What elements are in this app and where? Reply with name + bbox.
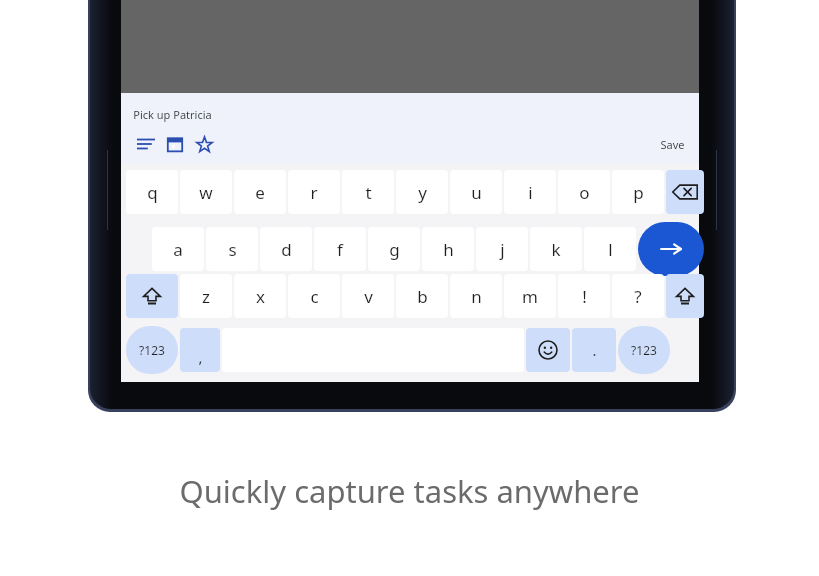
button[interactable]: o xyxy=(558,170,610,214)
button[interactable]: Emoji xyxy=(526,328,570,372)
staticText: z xyxy=(202,285,210,308)
staticText: . xyxy=(592,340,597,360)
staticText: i xyxy=(528,181,533,204)
staticText: o xyxy=(579,181,590,204)
button[interactable]: , xyxy=(180,328,220,372)
button[interactable]: Enter xyxy=(638,222,704,276)
staticText: ! xyxy=(582,285,587,308)
staticText: , xyxy=(198,347,203,367)
staticText: t xyxy=(365,181,372,204)
staticText: a xyxy=(173,238,183,261)
staticText: r xyxy=(310,181,318,204)
staticText: q xyxy=(147,181,158,204)
button[interactable]: f xyxy=(314,227,366,271)
staticText: e xyxy=(255,181,265,204)
button[interactable]: x xyxy=(234,274,286,318)
staticText: d xyxy=(281,238,292,261)
staticText: b xyxy=(417,285,428,308)
button[interactable]: i xyxy=(504,170,556,214)
staticText: c xyxy=(310,285,319,308)
staticText: ?123 xyxy=(631,342,657,358)
staticText: s xyxy=(228,238,237,261)
button[interactable]: c xyxy=(288,274,340,318)
other: Details xyxy=(137,137,155,151)
staticText: x xyxy=(256,285,265,308)
button[interactable]: e xyxy=(234,170,286,214)
button[interactable]: y xyxy=(396,170,448,214)
staticText: g xyxy=(389,238,400,261)
button[interactable]: m xyxy=(504,274,556,318)
button[interactable]: a xyxy=(152,227,204,271)
button[interactable]: d xyxy=(260,227,312,271)
staticText: Pick up Patricia xyxy=(133,107,212,122)
staticText: Quickly capture tasks anywhere xyxy=(179,470,640,512)
button[interactable]: r xyxy=(288,170,340,214)
staticText: m xyxy=(522,285,538,308)
staticText: j xyxy=(500,238,505,261)
staticText: w xyxy=(199,181,213,204)
button[interactable]: z xyxy=(180,274,232,318)
button[interactable]: Star xyxy=(191,131,217,157)
button[interactable]: ?123 xyxy=(126,326,178,374)
button[interactable]: Set date xyxy=(162,131,188,157)
staticText: f xyxy=(337,238,343,261)
button[interactable]: q xyxy=(126,170,178,214)
staticText: p xyxy=(633,181,644,204)
button[interactable]: ! xyxy=(558,274,610,318)
button[interactable]: Save xyxy=(660,137,685,152)
button[interactable]: h xyxy=(422,227,474,271)
staticText: l xyxy=(608,238,613,261)
staticText: Save xyxy=(660,137,685,152)
other: Star xyxy=(196,136,213,153)
button[interactable]: Shift xyxy=(666,274,704,318)
button[interactable]: ? xyxy=(612,274,664,318)
button[interactable]: ?123 xyxy=(618,326,670,374)
staticText: n xyxy=(471,285,482,308)
button[interactable]: Backspace xyxy=(666,170,704,214)
button[interactable]: v xyxy=(342,274,394,318)
button[interactable]: Shift xyxy=(126,274,178,318)
button[interactable]: k xyxy=(530,227,582,271)
other: Set date xyxy=(167,136,183,152)
button[interactable]: j xyxy=(476,227,528,271)
button[interactable]: Details xyxy=(133,131,159,157)
button[interactable]: . xyxy=(572,328,616,372)
staticText: h xyxy=(443,238,454,261)
staticText: u xyxy=(471,181,482,204)
button[interactable]: g xyxy=(368,227,420,271)
staticText: ?123 xyxy=(139,342,165,358)
button[interactable]: s xyxy=(206,227,258,271)
staticText: k xyxy=(551,238,561,261)
button[interactable]: l xyxy=(584,227,636,271)
button[interactable]: n xyxy=(450,274,502,318)
staticText: y xyxy=(418,181,427,204)
staticText: ? xyxy=(634,285,642,308)
button[interactable]: p xyxy=(612,170,664,214)
button[interactable]: w xyxy=(180,170,232,214)
staticText: v xyxy=(364,285,373,308)
button[interactable]: u xyxy=(450,170,502,214)
button[interactable]: t xyxy=(342,170,394,214)
button[interactable]: b xyxy=(396,274,448,318)
